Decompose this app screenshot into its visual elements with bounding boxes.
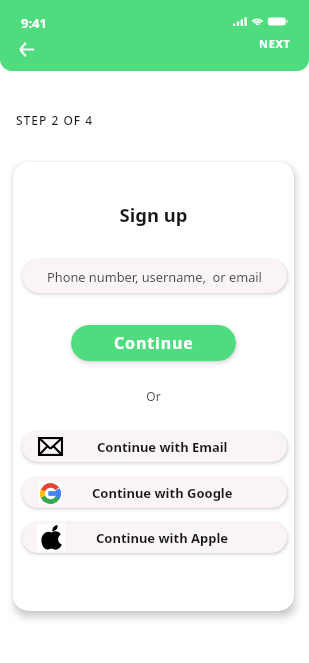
button[interactable]: Continue <box>71 325 236 361</box>
staticText: Continue with Google <box>92 484 233 502</box>
staticText: NEXT <box>259 36 291 51</box>
staticText: 9:41 <box>21 14 47 32</box>
staticText: Continue with Email <box>97 438 228 456</box>
button[interactable]: NEXT <box>259 36 291 51</box>
button[interactable]: Continue with Email <box>22 431 287 462</box>
staticText: Phone number, username, or email <box>47 268 262 285</box>
button[interactable]: Continue with Apple <box>22 522 287 553</box>
staticText: Or <box>13 388 294 404</box>
button[interactable]: Back <box>13 36 40 63</box>
staticText: Continue with Apple <box>96 529 229 547</box>
staticText: Continue <box>114 332 194 354</box>
staticText: Sign up <box>13 202 294 227</box>
button[interactable]: Phone number, username, or email <box>22 259 287 293</box>
button[interactable]: Continue with Google <box>22 477 287 508</box>
staticText: STEP 2 OF 4 <box>16 112 94 128</box>
